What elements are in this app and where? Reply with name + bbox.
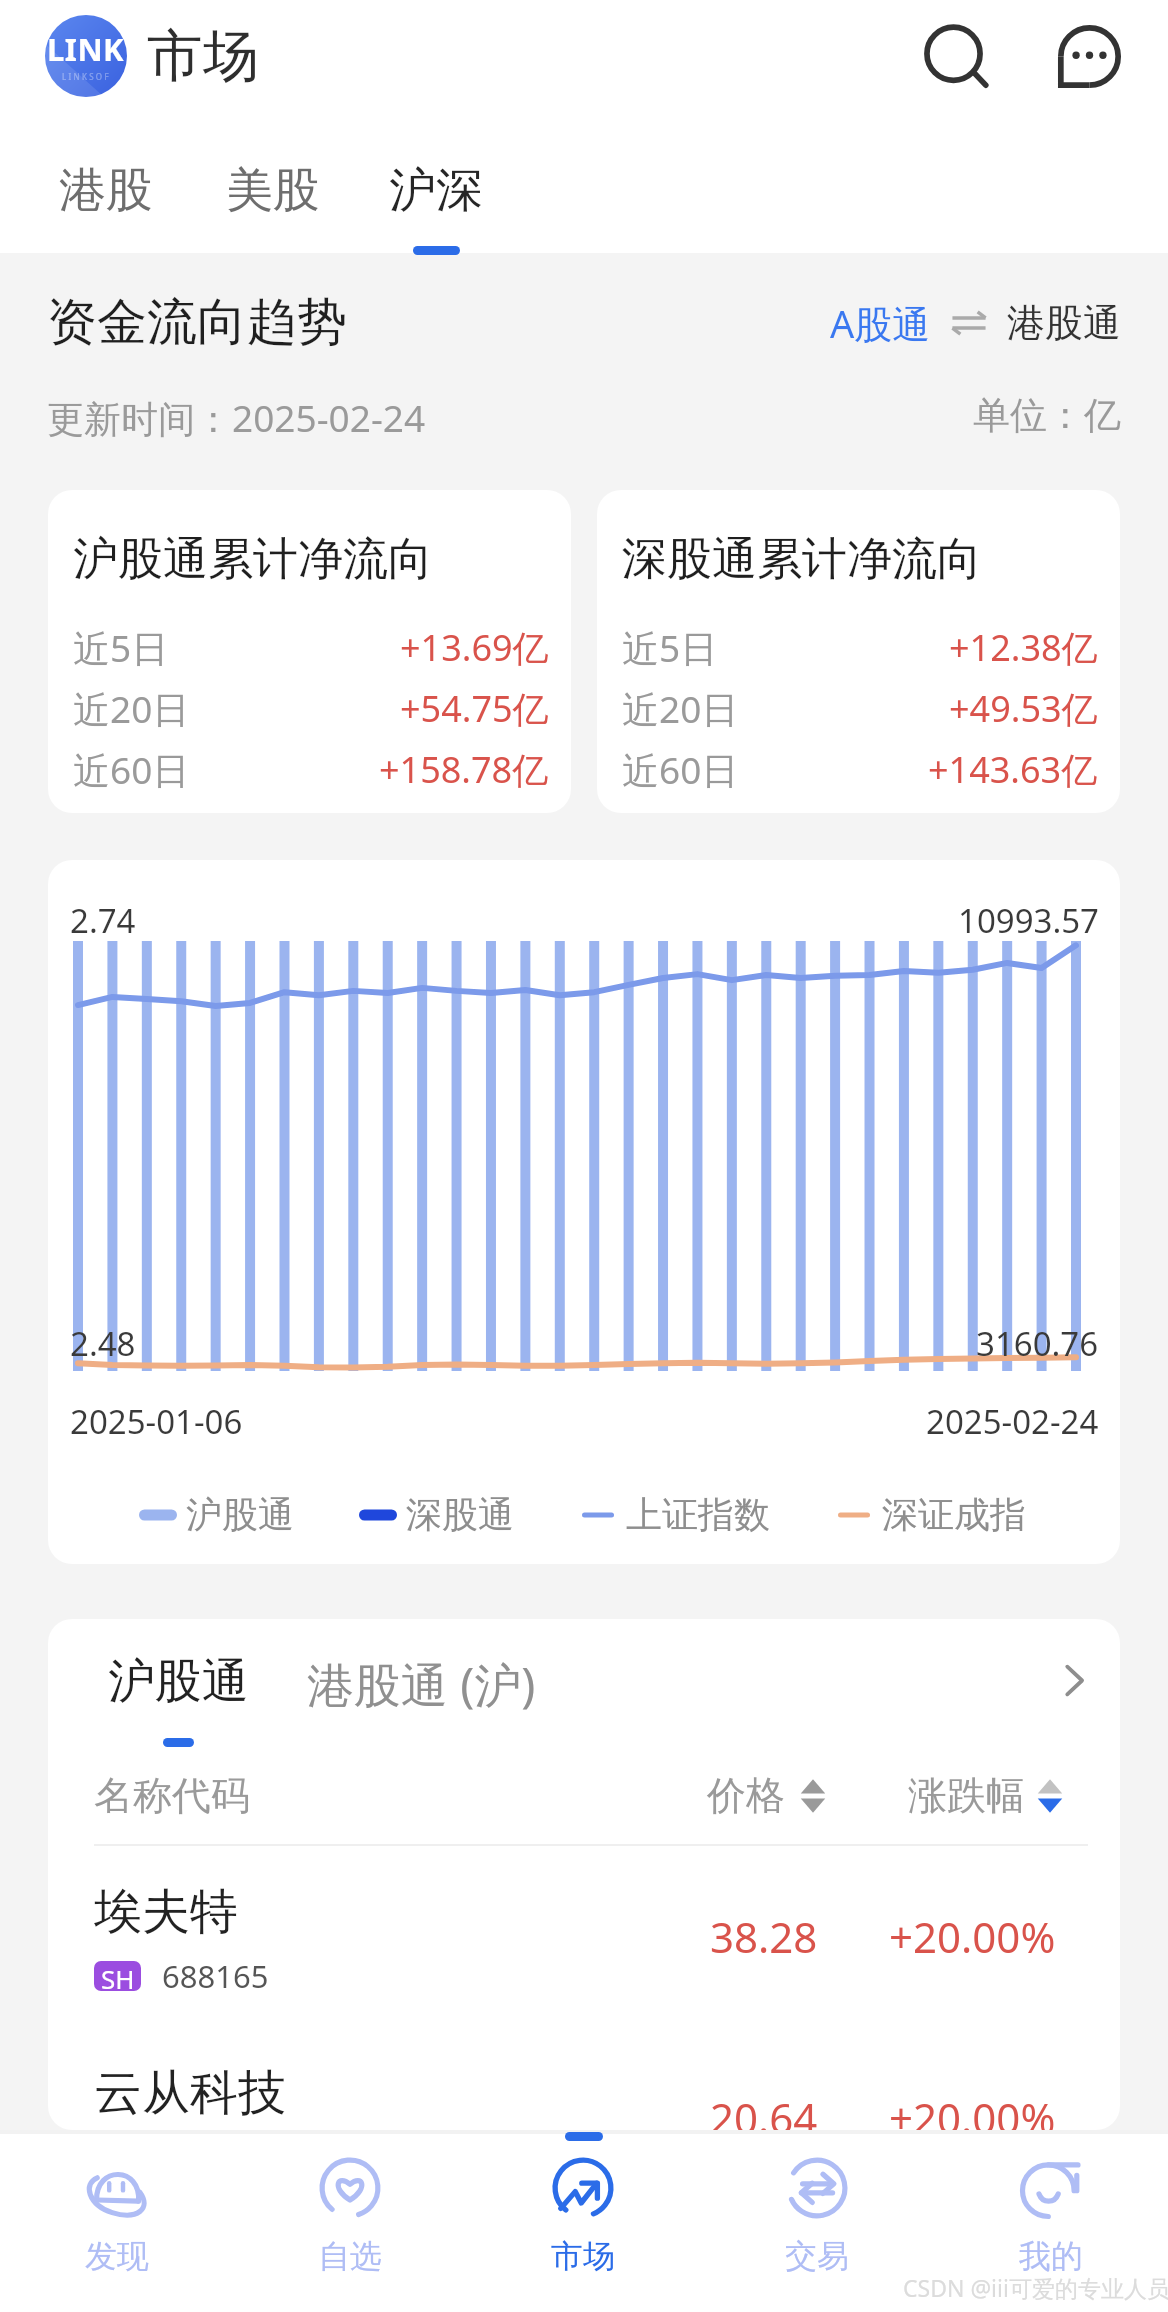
staticText: +49.53亿 [949,684,1098,733]
button[interactable]: 美股 [226,161,320,246]
staticText: 深股通 [406,1492,514,1537]
staticText: 近60日 [73,744,190,795]
staticText: 更新时间：2025-02-24 [47,392,426,443]
staticText: +12.38亿 [949,623,1098,672]
staticText: 单位：亿 [973,392,1121,439]
button[interactable]: More [1044,1650,1104,1710]
staticText: 2.74 [70,898,136,943]
staticText: 深证成指 [882,1492,1026,1537]
staticText: 上证指数 [626,1492,770,1537]
button[interactable]: 深股通累计净流向 [597,490,1120,813]
staticText: 交易 [785,2236,849,2276]
staticText: +20.00% [889,1908,1056,1965]
staticText: 近20日 [622,683,739,734]
button[interactable]: 价格 [707,1771,826,1820]
button[interactable]: 涨跌幅 [908,1771,1063,1820]
staticText: 价格 [707,1771,785,1820]
button[interactable]: 沪股通累计净流向 [48,490,571,813]
staticText: 市场 [147,21,259,92]
staticText: 港股通 [1007,299,1121,347]
staticText: 市场 [551,2236,615,2276]
button[interactable]: 港股 [59,161,153,246]
staticText: +20.00% [889,2089,1056,2130]
staticText: 沪股通 [108,1652,249,1711]
button[interactable]: 埃夫特 [48,1846,1120,2027]
button[interactable]: 自选 [233,2130,466,2312]
staticText: 近5日 [622,622,718,673]
staticText: SH [101,1961,135,1991]
button[interactable]: 港股通 (沪) [307,1652,536,1716]
staticText: 涨跌幅 [908,1771,1025,1820]
staticText: 2025-01-06 [70,1399,243,1444]
staticText: 发现 [85,2236,149,2276]
staticText: 资金流向趋势 [47,291,347,354]
button[interactable]: A股通 [830,297,1121,349]
staticText: 2025-02-24 [926,1399,1099,1444]
staticText: 近20日 [73,683,190,734]
staticText: 10993.57 [958,898,1099,943]
staticText: 港股 [59,161,153,220]
staticText: 38.28 [710,1908,818,1965]
staticText: 20.64 [710,2089,818,2130]
staticText: 沪深 [389,161,483,220]
button[interactable]: 沪深 [389,161,483,255]
staticText: 云从科技 [94,2063,286,2123]
staticText: 沪股通累计净流向 [73,531,433,588]
staticText: 2.48 [70,1321,136,1366]
staticText: 688165 [162,1955,269,1997]
button[interactable]: 发现 [0,2130,233,2312]
staticText: CSDN @iii可爱的专业人员 [903,2272,1168,2303]
staticText: 3160.76 [976,1321,1099,1366]
staticText: A股通 [830,297,931,349]
staticText: LINKSOF [62,71,111,82]
staticText: LINK [47,28,125,70]
button[interactable]: Search [910,10,1002,102]
staticText: +54.75亿 [400,684,549,733]
staticText: +158.78亿 [379,745,549,794]
button[interactable]: 市场 [466,2130,700,2312]
staticText: 美股 [226,161,320,220]
staticText: 名称代码 [94,1771,250,1820]
button[interactable]: 沪股通 [108,1652,249,1747]
staticText: 沪股通 [186,1492,294,1537]
staticText: 深股通累计净流向 [622,531,982,588]
staticText: 近5日 [73,622,169,673]
button[interactable]: 我的 [934,2130,1168,2312]
button[interactable]: 交易 [700,2130,934,2312]
staticText: 自选 [318,2236,382,2276]
staticText: 近60日 [622,744,739,795]
staticText: 我的 [1019,2236,1083,2276]
staticText: +13.69亿 [400,623,549,672]
staticText: +143.63亿 [928,745,1098,794]
staticText: 埃夫特 [94,1882,238,1942]
button[interactable]: Messages [1043,10,1135,102]
button[interactable]: 云从科技 [48,2027,1120,2130]
